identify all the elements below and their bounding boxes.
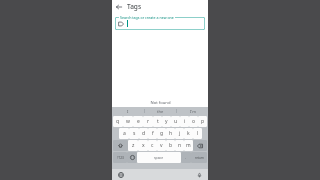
button[interactable]: Change language: [117, 171, 125, 179]
button[interactable]: b: [166, 140, 175, 151]
button[interactable]: p: [198, 116, 207, 127]
staticText: m: [186, 142, 191, 149]
staticText: r: [147, 118, 150, 125]
button[interactable]: ?123: [113, 152, 127, 163]
button[interactable]: h: [166, 128, 175, 139]
button[interactable]: g: [157, 128, 166, 139]
button[interactable]: w: [123, 116, 133, 127]
button[interactable]: a: [119, 128, 129, 139]
button[interactable]: x: [138, 140, 148, 151]
button[interactable]: Back: [114, 2, 124, 12]
button[interactable]: m: [184, 140, 193, 151]
button[interactable]: space: [137, 152, 181, 163]
staticText: x: [142, 142, 145, 149]
button[interactable]: I'm: [177, 107, 208, 115]
staticText: .: [185, 155, 187, 160]
staticText: j: [179, 130, 181, 137]
button[interactable]: c: [148, 140, 157, 151]
staticText: h: [169, 130, 173, 137]
staticText: ?123: [117, 156, 124, 160]
staticText: g: [160, 130, 164, 137]
staticText: e: [137, 118, 140, 125]
staticText: z: [132, 142, 135, 149]
button[interactable]: e: [133, 116, 143, 127]
button[interactable]: Voice input: [195, 171, 203, 179]
staticText: b: [169, 142, 173, 149]
staticText: f: [152, 130, 154, 137]
staticText: Not found: [150, 100, 171, 106]
button[interactable]: l: [193, 128, 202, 139]
staticText: q: [116, 118, 120, 125]
staticText: return: [195, 156, 204, 160]
button[interactable]: z: [128, 140, 138, 151]
staticText: o: [192, 118, 196, 125]
staticText: t: [157, 118, 159, 125]
staticText: Search tags or create a new one: [120, 15, 174, 20]
staticText: space: [154, 155, 164, 160]
button[interactable]: k: [184, 128, 193, 139]
button[interactable]: d: [139, 128, 148, 139]
staticText: c: [151, 142, 154, 149]
button[interactable]: v: [157, 140, 166, 151]
button[interactable]: Shift: [113, 140, 128, 151]
staticText: the: [157, 109, 164, 114]
button[interactable]: q: [113, 116, 123, 127]
staticText: I'm: [190, 109, 196, 114]
button[interactable]: o: [189, 116, 198, 127]
staticText: s: [133, 130, 136, 137]
staticText: Tags: [127, 2, 142, 11]
staticText: I: [127, 109, 129, 114]
button[interactable]: j: [175, 128, 184, 139]
staticText: w: [126, 118, 130, 125]
button[interactable]: r: [143, 116, 153, 127]
button[interactable]: Backspace: [193, 140, 207, 151]
button[interactable]: the: [145, 107, 176, 115]
button[interactable]: s: [129, 128, 139, 139]
staticText: p: [201, 118, 205, 125]
button[interactable]: [115, 17, 205, 30]
button[interactable]: f: [148, 128, 157, 139]
staticText: l: [197, 130, 199, 137]
button[interactable]: return: [191, 152, 207, 163]
staticText: n: [178, 142, 182, 149]
staticText: a: [123, 130, 126, 137]
button[interactable]: i: [180, 116, 189, 127]
staticText: d: [142, 130, 146, 137]
staticText: y: [165, 118, 168, 125]
button[interactable]: Emoji: [127, 152, 137, 163]
button[interactable]: n: [175, 140, 184, 151]
staticText: v: [160, 142, 163, 149]
button[interactable]: t: [153, 116, 162, 127]
button[interactable]: Tags: [127, 2, 142, 11]
button[interactable]: u: [171, 116, 180, 127]
button[interactable]: I: [112, 107, 144, 115]
staticText: u: [174, 118, 178, 125]
button[interactable]: y: [162, 116, 171, 127]
staticText: i: [184, 118, 186, 125]
staticText: k: [187, 130, 190, 137]
